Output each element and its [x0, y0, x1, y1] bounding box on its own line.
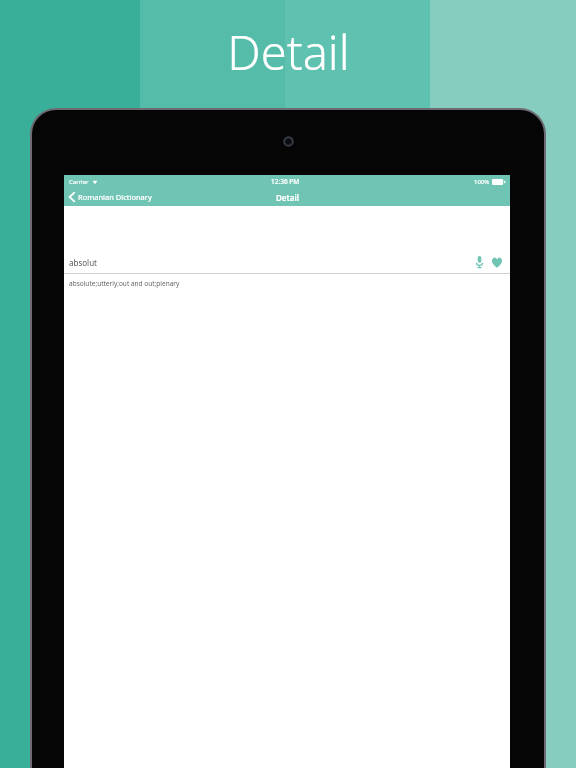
- staticText: 100%: [474, 178, 490, 186]
- button[interactable]: Voice search: [471, 254, 487, 270]
- staticText: 12:36 PM: [271, 177, 300, 186]
- staticText: absolute;utterly;out and out;plenary: [69, 279, 180, 288]
- staticText: Detail: [276, 192, 299, 203]
- staticText: Detail: [227, 20, 350, 84]
- button[interactable]: Romanian Dictionary: [64, 190, 156, 204]
- staticText: Carrier: [69, 178, 89, 186]
- button[interactable]: Add to favourites: [489, 254, 505, 270]
- staticText: absolut: [69, 257, 97, 268]
- staticText: Romanian Dictionary: [78, 192, 152, 202]
